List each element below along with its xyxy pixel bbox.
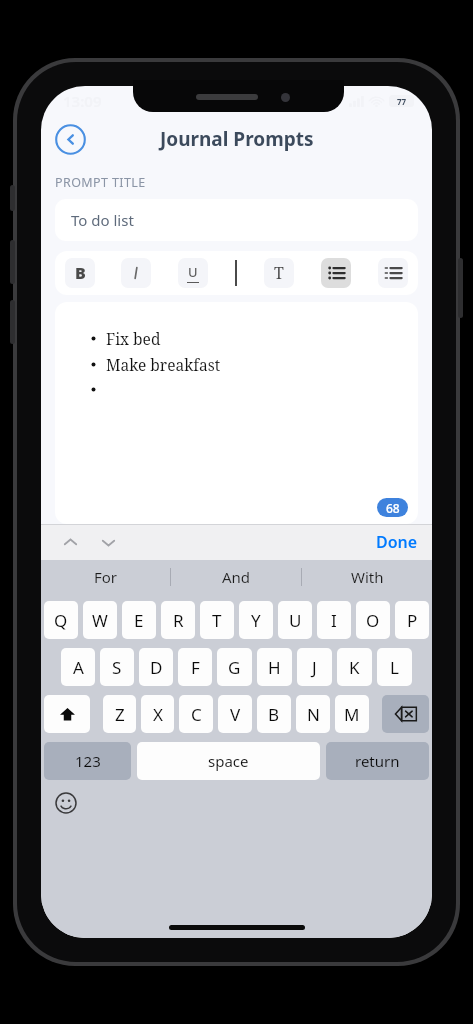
staticText: Make breakfast [106,354,221,375]
button[interactable]: And [171,560,301,594]
button[interactable]: Numbered list [378,258,408,288]
button[interactable]: C [179,695,213,733]
staticText: 68 [386,500,400,516]
button[interactable]: W [83,601,117,639]
button[interactable]: Backspace [382,695,429,733]
button[interactable]: return [326,742,429,780]
staticText: B [75,262,86,284]
button[interactable]: X [141,695,174,733]
staticText: Y [251,609,261,632]
staticText: H [268,656,281,679]
staticText: R [173,609,184,632]
staticText: K [349,656,360,679]
button[interactable]: Z [103,695,136,733]
staticText: 77 [397,96,407,107]
staticText: C [191,703,202,726]
button[interactable]: M [335,695,369,733]
button[interactable]: To do list [55,199,418,241]
staticText: 13:09 [63,91,102,111]
button[interactable]: Text style [264,258,294,288]
staticText: space [208,751,249,771]
button[interactable]: U [278,601,312,639]
staticText: 123 [75,751,101,771]
button[interactable]: Bulleted list [321,258,351,288]
staticText: Done [376,531,418,553]
button[interactable]: With [302,560,432,594]
staticText: G [228,656,241,679]
button[interactable]: Q [44,601,78,639]
staticText: To do list [71,210,134,230]
staticText: B [268,703,280,726]
button[interactable]: B [65,258,95,288]
button[interactable]: Shift [44,695,90,733]
button[interactable]: space [137,742,320,780]
button[interactable]: P [395,601,429,639]
button[interactable]: L [377,648,412,686]
staticText: D [150,656,163,679]
staticText: L [390,656,399,679]
staticText: U [188,263,198,281]
button[interactable]: Done [376,531,418,553]
button[interactable]: D [139,648,173,686]
staticText: M [344,703,360,726]
button[interactable]: Italic [121,258,151,288]
staticText: Z [115,703,125,726]
button[interactable]: S [100,648,134,686]
staticText: return [355,751,400,771]
button[interactable]: K [337,648,372,686]
staticText: J [312,656,317,679]
staticText: PROMPT TITLE [55,174,146,191]
button[interactable]: R [161,601,195,639]
button[interactable]: 123 [44,742,131,780]
staticText: W [92,609,108,632]
button[interactable]: I [317,601,351,639]
staticText: For [94,567,118,587]
staticText: Q [54,609,68,632]
staticText: N [307,703,320,726]
button[interactable]: Underline [178,258,208,288]
button[interactable]: T [200,601,234,639]
button[interactable]: B [257,695,291,733]
staticText: O [366,609,380,632]
button[interactable]: Emoji keyboard [53,790,79,816]
staticText: P [407,609,418,632]
button[interactable]: G [217,648,252,686]
staticText: X [153,703,163,726]
button[interactable]: Previous field [59,531,81,553]
staticText: A [73,656,84,679]
button[interactable]: Back [53,122,87,156]
button[interactable]: Next field [97,531,119,553]
staticText: And [222,567,251,587]
button[interactable]: F [178,648,212,686]
button[interactable]: Y [239,601,273,639]
button[interactable]: A [61,648,95,686]
staticText: T [212,609,222,632]
staticText: E [134,609,144,632]
staticText: U [289,609,302,632]
button[interactable]: H [257,648,292,686]
button[interactable]: N [296,695,330,733]
staticText: F [191,656,200,679]
staticText: T [274,262,284,284]
staticText: S [112,656,122,679]
button[interactable]: E [122,601,156,639]
button[interactable]: Fix bed [55,302,418,524]
button[interactable]: J [297,648,332,686]
staticText: Journal Prompts [160,126,314,152]
staticText: Fix bed [106,328,161,349]
button[interactable]: O [356,601,390,639]
staticText: V [230,703,241,726]
staticText: With [351,567,384,587]
button[interactable]: V [218,695,252,733]
staticText: I [331,609,337,632]
button[interactable]: For [41,560,170,594]
